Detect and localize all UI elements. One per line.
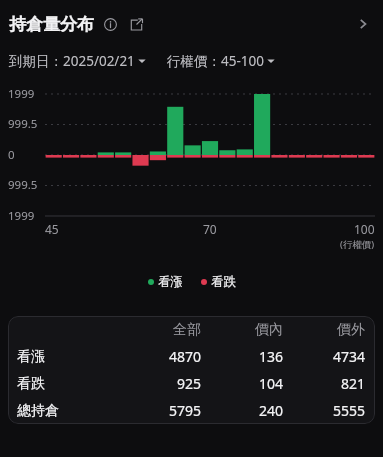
button[interactable]: 全部 — [8, 316, 375, 343]
staticText: 價外 — [283, 321, 365, 339]
staticText: 104 — [201, 374, 283, 393]
staticText: 45 — [45, 221, 59, 237]
button[interactable]: Info — [101, 15, 119, 33]
staticText: 看跌 — [211, 274, 236, 290]
staticText: 看跌 — [17, 375, 45, 393]
staticText: 全部 — [112, 321, 201, 339]
staticText: 價內 — [201, 321, 283, 339]
staticText: (行權價) — [340, 238, 375, 251]
button[interactable]: 看跌 — [201, 274, 236, 290]
button[interactable]: 看漲 — [8, 343, 375, 370]
button[interactable]: 總持倉 — [8, 397, 375, 424]
button[interactable]: Open details — [347, 8, 379, 40]
staticText: 925 — [112, 374, 201, 393]
staticText: 看漲 — [17, 348, 45, 366]
button[interactable]: 行權價：45-100 — [167, 52, 275, 70]
staticText: 1999 — [8, 208, 35, 224]
staticText: 70 — [203, 221, 217, 237]
button[interactable]: 看跌 — [8, 370, 375, 397]
button[interactable]: 持倉量分布 — [0, 0, 383, 48]
staticText: 4734 — [283, 347, 365, 366]
staticText: 0 — [8, 147, 15, 163]
button[interactable]: 看漲 — [148, 274, 183, 290]
staticText: 看漲 — [158, 274, 183, 290]
staticText: 136 — [201, 347, 283, 366]
staticText: 5795 — [112, 401, 201, 420]
staticText: 999.5 — [8, 177, 38, 193]
staticText: 821 — [283, 374, 365, 393]
staticText: 到期日：2025/02/21 — [9, 52, 135, 70]
button[interactable]: 到期日：2025/02/21 — [9, 52, 146, 70]
staticText: 5555 — [283, 401, 365, 420]
staticText: 100 — [354, 221, 375, 237]
staticText: 240 — [201, 401, 283, 420]
staticText: 1999 — [8, 86, 35, 102]
staticText: 999.5 — [8, 116, 38, 132]
staticText: 持倉量分布 — [9, 14, 94, 35]
staticText: 4870 — [112, 347, 201, 366]
staticText: 總持倉 — [17, 402, 59, 420]
staticText: 行權價：45-100 — [167, 52, 264, 70]
button[interactable]: Share — [127, 15, 145, 33]
